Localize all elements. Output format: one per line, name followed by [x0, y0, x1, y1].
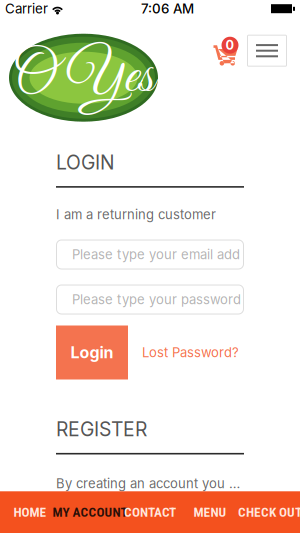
button[interactable]: Lost Password? [128, 345, 239, 360]
staticText: 0 [225, 37, 234, 53]
staticText: Please type your email add [72, 247, 240, 262]
staticText: By creating an account you will [56, 475, 244, 491]
button[interactable]: Cart [207, 36, 245, 66]
button[interactable]: MY ACCOUNT [60, 491, 120, 533]
staticText: 7:06 AM [141, 1, 194, 17]
button[interactable]: Menu [247, 35, 287, 67]
staticText: LOGIN [56, 151, 115, 174]
staticText: Please type your password [72, 292, 241, 307]
button[interactable]: HOME [0, 491, 60, 533]
staticText: MENU [193, 504, 226, 520]
staticText: HOME [13, 504, 46, 520]
button[interactable]: CHECK OUT [240, 491, 300, 533]
staticText: MY ACCOUNT [52, 504, 127, 520]
staticText: Lost Password? [142, 345, 239, 360]
staticText: Login [70, 343, 113, 362]
button[interactable]: CONTACT [120, 491, 180, 533]
staticText: CHECK OUT [238, 504, 300, 520]
staticText: REGISTER [56, 417, 147, 441]
staticText: CONTACT [124, 504, 176, 520]
staticText: O Yes [12, 41, 154, 114]
button[interactable]: MENU [180, 491, 240, 533]
staticText: Carrier [5, 1, 48, 17]
staticText: I am a returning customer [56, 207, 216, 222]
button[interactable]: Login [56, 325, 128, 379]
